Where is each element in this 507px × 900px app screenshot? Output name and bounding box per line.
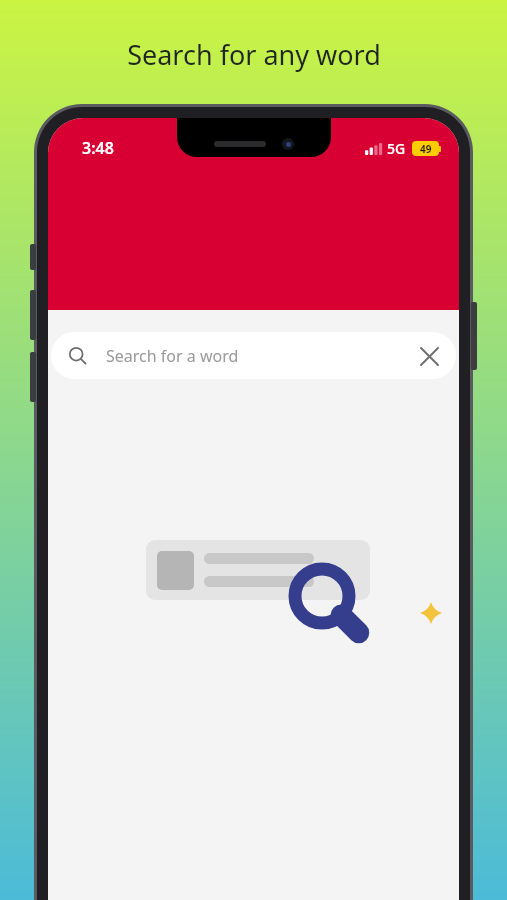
button[interactable]: Clear search xyxy=(407,334,451,378)
staticText: Search for a word xyxy=(106,345,239,367)
staticText: 5G xyxy=(387,139,406,158)
staticText: 3:48 xyxy=(82,137,114,159)
staticText: Search for any word xyxy=(127,36,381,73)
staticText: 49 xyxy=(420,142,432,156)
button[interactable]: Search for a word xyxy=(51,332,456,379)
